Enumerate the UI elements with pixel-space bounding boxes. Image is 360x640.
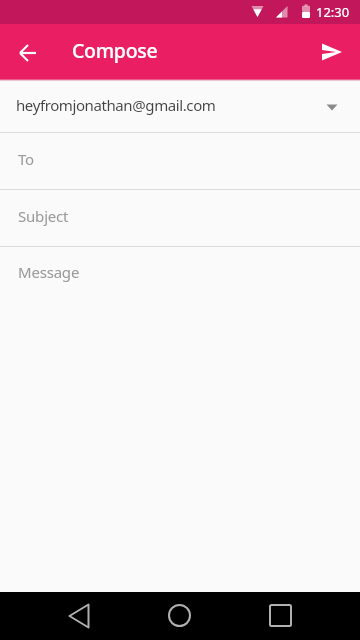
staticText: 12:30 xyxy=(316,3,350,21)
button[interactable]: To xyxy=(0,133,360,189)
button[interactable] xyxy=(12,37,44,69)
staticText: Compose xyxy=(72,37,158,64)
button[interactable] xyxy=(55,592,103,640)
button[interactable]: Subject xyxy=(0,190,360,246)
staticText: Subject xyxy=(18,206,69,226)
staticText: heyfromjonathan@gmail.com xyxy=(16,95,216,115)
button[interactable] xyxy=(256,592,304,640)
button[interactable]: Message xyxy=(0,247,360,592)
button[interactable]: heyfromjonathan@gmail.com xyxy=(0,81,360,132)
staticText: Message xyxy=(18,262,80,282)
button[interactable] xyxy=(156,592,204,640)
button[interactable] xyxy=(319,40,345,66)
staticText: To xyxy=(18,149,34,169)
